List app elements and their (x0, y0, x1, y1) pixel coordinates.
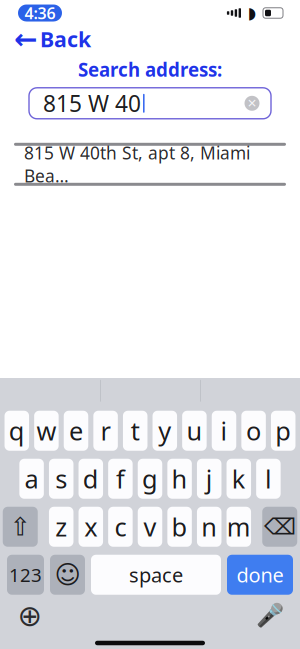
staticText: v (143, 510, 156, 543)
button[interactable]: n (197, 507, 221, 547)
staticText: 815 W 40 (43, 88, 141, 118)
button[interactable]: t (123, 411, 147, 451)
button[interactable]: v (138, 507, 162, 547)
button[interactable]: k (226, 459, 251, 499)
button[interactable]: u (182, 411, 207, 451)
staticText: l (265, 462, 272, 495)
button[interactable]: c (108, 507, 133, 547)
staticText: ✕ (247, 96, 257, 110)
button[interactable]: Emoji (50, 555, 85, 595)
staticText: m (227, 510, 251, 543)
button[interactable]: x (79, 507, 103, 547)
staticText: done (236, 561, 283, 588)
staticText: a (25, 462, 39, 495)
staticText: p (275, 414, 291, 447)
button[interactable]: Delete (262, 507, 297, 547)
staticText: q (9, 414, 25, 447)
staticText: ⊕ (17, 599, 42, 632)
button[interactable]: z (49, 507, 73, 547)
button[interactable]: m (226, 507, 251, 547)
staticText: h (172, 462, 188, 495)
button[interactable]: j (197, 459, 221, 499)
button[interactable]: ← (0, 19, 91, 59)
staticText: ◗ (247, 4, 255, 22)
button[interactable]: i (212, 411, 236, 451)
staticText: x (84, 510, 97, 543)
button[interactable]: 815 W 40th St, apt 8, Miami Bea… (0, 146, 300, 183)
button[interactable]: 123 (7, 555, 44, 595)
button[interactable]: Dictation (250, 599, 290, 633)
button[interactable]: done (227, 555, 293, 595)
staticText: ⌫ (264, 514, 296, 540)
button[interactable]: d (78, 459, 103, 499)
button[interactable]: w (34, 411, 59, 451)
staticText: n (201, 510, 217, 543)
staticText: ← (14, 23, 37, 55)
staticText: 🎤 (256, 603, 284, 629)
button[interactable]: h (167, 459, 192, 499)
button[interactable]: e (64, 411, 88, 451)
button[interactable]: p (271, 411, 295, 451)
button[interactable]: r (93, 411, 118, 451)
button[interactable]: g (138, 459, 162, 499)
button[interactable]: q (5, 411, 29, 451)
staticText: b (172, 510, 188, 543)
button[interactable]: s (49, 459, 73, 499)
staticText: t (131, 414, 140, 447)
button[interactable]: y (153, 411, 177, 451)
staticText: ⇧ (10, 512, 31, 541)
button[interactable]: Shift (3, 507, 38, 547)
staticText: j (206, 462, 213, 495)
button[interactable]: l (256, 459, 281, 499)
button[interactable]: Change keyboard (10, 599, 50, 633)
staticText: k (232, 462, 246, 495)
staticText: u (186, 414, 202, 447)
staticText: i (220, 414, 227, 447)
staticText: w (36, 414, 56, 447)
button[interactable]: space (91, 555, 221, 595)
staticText: s (55, 462, 67, 495)
staticText: d (83, 462, 99, 495)
staticText: g (142, 462, 158, 495)
staticText: y (158, 414, 171, 447)
button[interactable]: Clear text (239, 88, 265, 118)
staticText: f (116, 462, 125, 495)
staticText: 4:36 (24, 2, 55, 24)
staticText: z (55, 510, 67, 543)
button[interactable]: f (108, 459, 133, 499)
staticText: r (101, 414, 111, 447)
staticText: Back (40, 25, 91, 53)
staticText: 815 W 40th St, apt 8, Miami Bea… (24, 141, 250, 187)
staticText: ☺ (54, 560, 80, 589)
staticText: o (246, 414, 261, 447)
button[interactable]: a (19, 459, 44, 499)
staticText: Search address: (78, 57, 222, 82)
button[interactable]: b (167, 507, 192, 547)
button[interactable]: o (241, 411, 266, 451)
staticText: e (69, 414, 83, 447)
staticText: c (114, 510, 126, 543)
staticText: 123 (9, 562, 42, 587)
staticText: space (129, 561, 183, 588)
